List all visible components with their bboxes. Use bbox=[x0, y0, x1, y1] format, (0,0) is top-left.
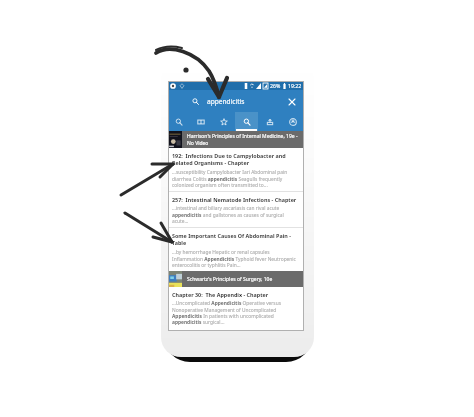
button[interactable]: Favorites bbox=[212, 112, 235, 131]
button[interactable]: Account bbox=[281, 112, 304, 131]
button[interactable]: Chapter 30: The Appendix - Chapter bbox=[168, 287, 304, 328]
staticText: Schwartz's Principles of Surgery, 10e bbox=[187, 276, 273, 283]
staticText: Harrison's Principles of Internal Medici… bbox=[187, 133, 304, 146]
button[interactable]: Share bbox=[258, 112, 281, 131]
button[interactable]: Some Important Causes Of Abdominal Pain … bbox=[168, 228, 304, 271]
staticText: ...by hemorrhage Hepatic or renal capsul… bbox=[172, 249, 300, 268]
button[interactable]: Search bbox=[168, 90, 304, 112]
staticText: appendicitis bbox=[207, 97, 245, 106]
button[interactable]: Library bbox=[190, 112, 212, 131]
staticText: ...Uncomplicated Appendicitis Operative … bbox=[172, 300, 300, 325]
staticText: Chapter 30: The Appendix - Chapter bbox=[172, 291, 269, 298]
button[interactable]: 257: Intestinal Nematode Infections - Ch… bbox=[168, 192, 304, 227]
button[interactable]: Harrison's Principles of Internal Medici… bbox=[168, 131, 304, 148]
button[interactable]: Schwartz's Principles of Surgery, 10e bbox=[168, 271, 304, 287]
other: Search bbox=[192, 98, 199, 105]
button[interactable]: 192: Infections Due to Campylobacter and… bbox=[168, 148, 304, 191]
staticText: 26% bbox=[270, 82, 281, 89]
staticText: 19:22 bbox=[288, 82, 302, 89]
staticText: 257: Intestinal Nematode Infections - Ch… bbox=[172, 196, 297, 203]
staticText: ...susceptibility Campylobacter Iari Abd… bbox=[172, 169, 300, 188]
staticText: Some Important Causes Of Abdominal Pain … bbox=[172, 232, 300, 247]
staticText: ...intestinal and biliary ascariasis can… bbox=[172, 205, 300, 224]
button[interactable]: Search results bbox=[235, 112, 258, 131]
staticText: 192: Infections Due to Campylobacter and… bbox=[172, 152, 300, 167]
button[interactable]: Search bbox=[168, 112, 190, 131]
other: Clear search bbox=[288, 98, 296, 106]
